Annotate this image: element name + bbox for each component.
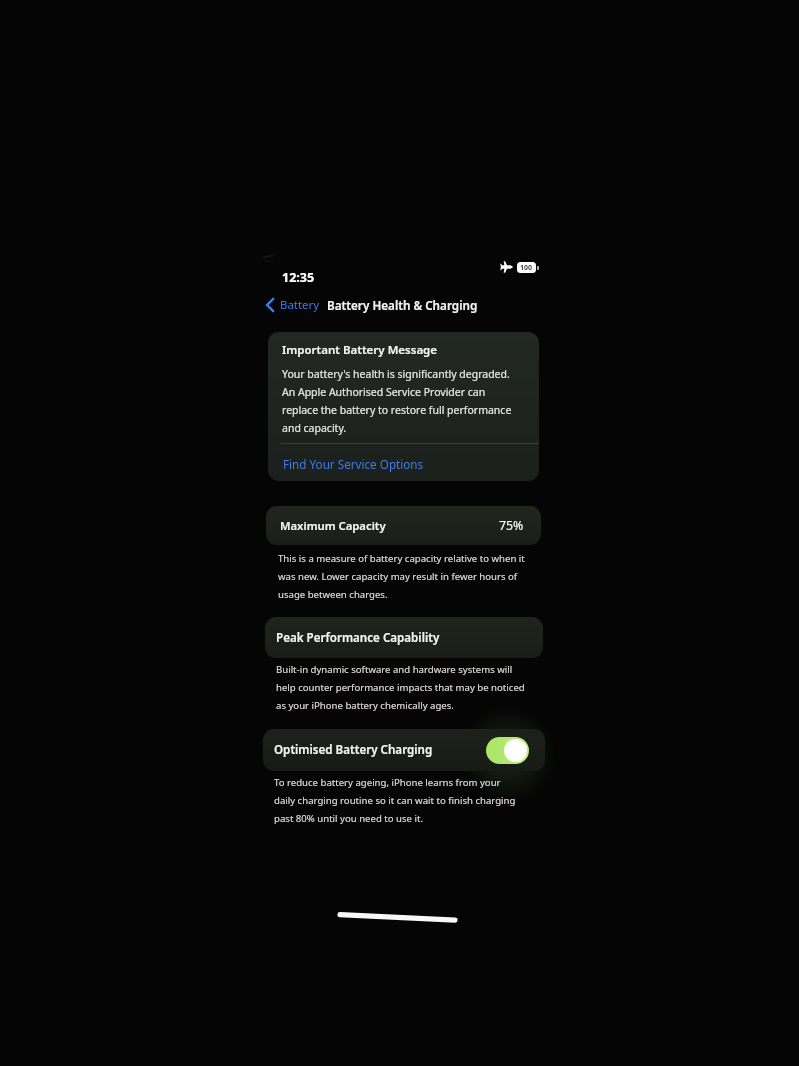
staticText: Battery xyxy=(280,297,319,313)
staticText: Your battery's health is significantly d… xyxy=(282,367,512,436)
button[interactable]: Find Your Service Options xyxy=(268,444,540,481)
staticText: Maximum Capacity xyxy=(280,518,386,533)
other: Battery 100 percent xyxy=(517,262,536,273)
staticText: Built-in dynamic software and hardware s… xyxy=(276,663,525,712)
staticText: 12:35 xyxy=(282,269,315,286)
other: Aeroplane mode xyxy=(501,261,513,273)
button[interactable]: Maximum Capacity xyxy=(266,506,541,545)
staticText: 75% xyxy=(499,517,524,534)
staticText: Optimised Battery Charging xyxy=(274,742,433,758)
staticText: Peak Performance Capability xyxy=(276,630,440,646)
button[interactable]: Optimised Battery Charging, on xyxy=(486,737,529,764)
staticText: Find Your Service Options xyxy=(283,456,424,472)
staticText: Battery Health & Charging xyxy=(327,297,478,313)
staticText: To reduce battery ageing, iPhone learns … xyxy=(274,776,516,825)
staticText: 100 xyxy=(520,263,533,273)
button[interactable]: Optimised Battery Charging xyxy=(263,729,545,771)
button[interactable]: Peak Performance Capability xyxy=(265,617,543,658)
button[interactable]: Battery xyxy=(264,295,321,315)
staticText: This is a measure of battery capacity re… xyxy=(278,552,525,601)
staticText: Important Battery Message xyxy=(282,342,438,358)
